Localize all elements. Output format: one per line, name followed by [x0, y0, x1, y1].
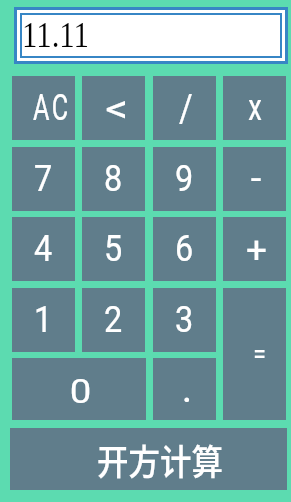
button[interactable]: + — [223, 217, 286, 281]
staticText: 9 — [175, 158, 194, 200]
button[interactable]: - — [223, 147, 286, 211]
staticText: 0 — [70, 371, 92, 411]
button[interactable]: = — [223, 288, 286, 420]
staticText: < — [105, 86, 129, 131]
staticText: 1 — [34, 299, 53, 341]
staticText: 开方计算 — [97, 434, 224, 485]
staticText: 11.11 — [22, 16, 90, 55]
staticText: + — [246, 229, 267, 272]
button[interactable]: 6 — [153, 217, 216, 281]
staticText: 6 — [175, 228, 194, 270]
button[interactable]: 7 — [12, 147, 75, 211]
staticText: 5 — [104, 228, 123, 270]
button[interactable]: 1 — [12, 288, 75, 352]
staticText: / — [179, 86, 193, 131]
button[interactable]: 5 — [82, 217, 145, 281]
button[interactable]: . — [153, 358, 216, 420]
button[interactable]: / — [153, 76, 216, 140]
staticText: 7 — [34, 158, 53, 200]
staticText: - — [251, 158, 261, 200]
button[interactable]: 9 — [153, 147, 216, 211]
button[interactable]: 2 — [82, 288, 145, 352]
button[interactable]: 8 — [82, 147, 145, 211]
staticText: AC — [33, 87, 71, 129]
staticText: . — [182, 367, 193, 412]
staticText: 4 — [34, 228, 53, 270]
button[interactable]: 开方计算 — [10, 428, 287, 490]
button[interactable]: 0 — [12, 358, 146, 420]
staticText: 3 — [175, 299, 194, 341]
staticText: = — [253, 338, 266, 370]
staticText: x — [248, 87, 262, 129]
button[interactable]: < — [82, 76, 145, 140]
staticText: 2 — [104, 299, 123, 341]
button[interactable]: x — [223, 76, 286, 140]
button[interactable]: AC — [12, 76, 75, 140]
button[interactable]: 3 — [153, 288, 216, 352]
button[interactable]: 4 — [12, 217, 75, 281]
staticText: 8 — [104, 158, 123, 200]
button[interactable]: 11.11 — [22, 15, 280, 56]
